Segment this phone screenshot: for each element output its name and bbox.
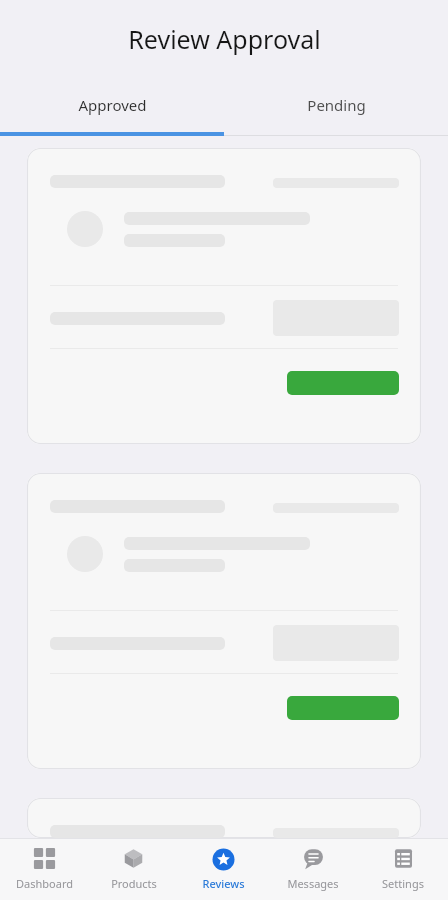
button[interactable] (27, 473, 421, 769)
button[interactable] (27, 148, 421, 444)
button[interactable]: Settings (358, 838, 448, 891)
button[interactable]: Products (89, 838, 178, 891)
staticText: Approved (78, 95, 147, 115)
staticText: Settings (382, 876, 424, 891)
button[interactable]: Pending (224, 78, 448, 132)
staticText: Messages (287, 876, 339, 891)
staticText: Pending (307, 95, 366, 115)
button[interactable] (287, 696, 399, 720)
staticText: Reviews (202, 876, 245, 891)
staticText: Products (111, 876, 157, 891)
button[interactable]: Reviews (178, 838, 268, 891)
button[interactable] (287, 371, 399, 395)
button[interactable] (27, 798, 421, 838)
staticText: Review Approval (128, 22, 321, 56)
button[interactable]: Approved (0, 78, 224, 132)
staticText: Dashboard (16, 876, 73, 891)
button[interactable]: Messages (268, 838, 358, 891)
button[interactable]: Dashboard (0, 838, 89, 891)
